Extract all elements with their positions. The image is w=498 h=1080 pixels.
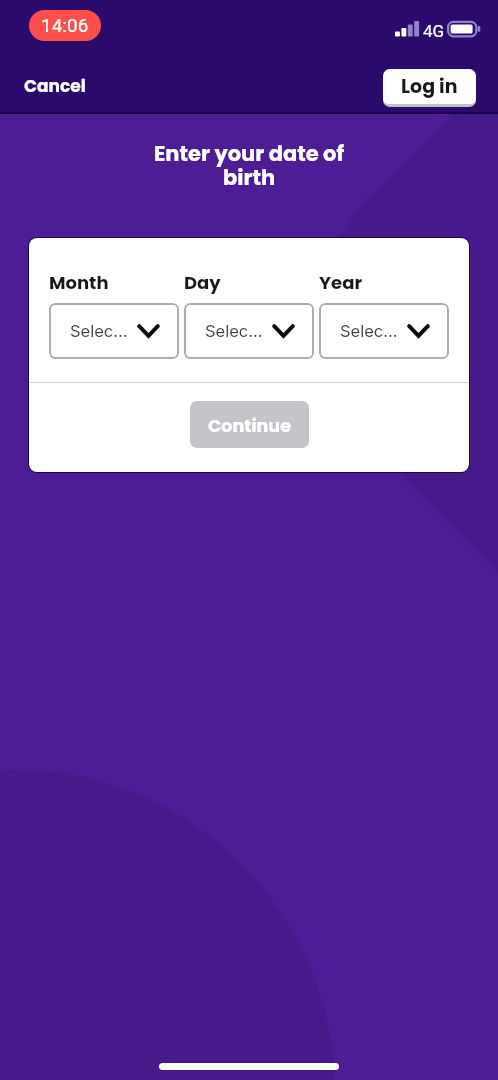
staticText: Selec... bbox=[70, 321, 128, 341]
staticText: Day bbox=[184, 270, 221, 295]
button[interactable]: Selec... bbox=[49, 303, 179, 359]
staticText: Selec... bbox=[205, 321, 263, 341]
staticText: 14:06 bbox=[41, 14, 89, 36]
button[interactable]: Cancel bbox=[24, 74, 86, 98]
staticText: Year bbox=[319, 270, 363, 295]
other: Battery level bbox=[447, 21, 481, 39]
button[interactable]: Selec... bbox=[184, 303, 314, 359]
staticText: Continue bbox=[208, 414, 291, 439]
button[interactable]: Continue bbox=[190, 401, 309, 448]
button[interactable]: Selec... bbox=[319, 303, 449, 359]
staticText: Log in bbox=[401, 73, 458, 100]
staticText: Cancel bbox=[24, 74, 86, 98]
staticText: Enter your date of birth bbox=[0, 139, 498, 192]
other: Mobile signal strength bbox=[395, 21, 419, 37]
staticText: Month bbox=[49, 270, 109, 295]
button[interactable]: Log in bbox=[383, 69, 476, 104]
staticText: 4G bbox=[423, 21, 445, 41]
staticText: Selec... bbox=[340, 321, 398, 341]
